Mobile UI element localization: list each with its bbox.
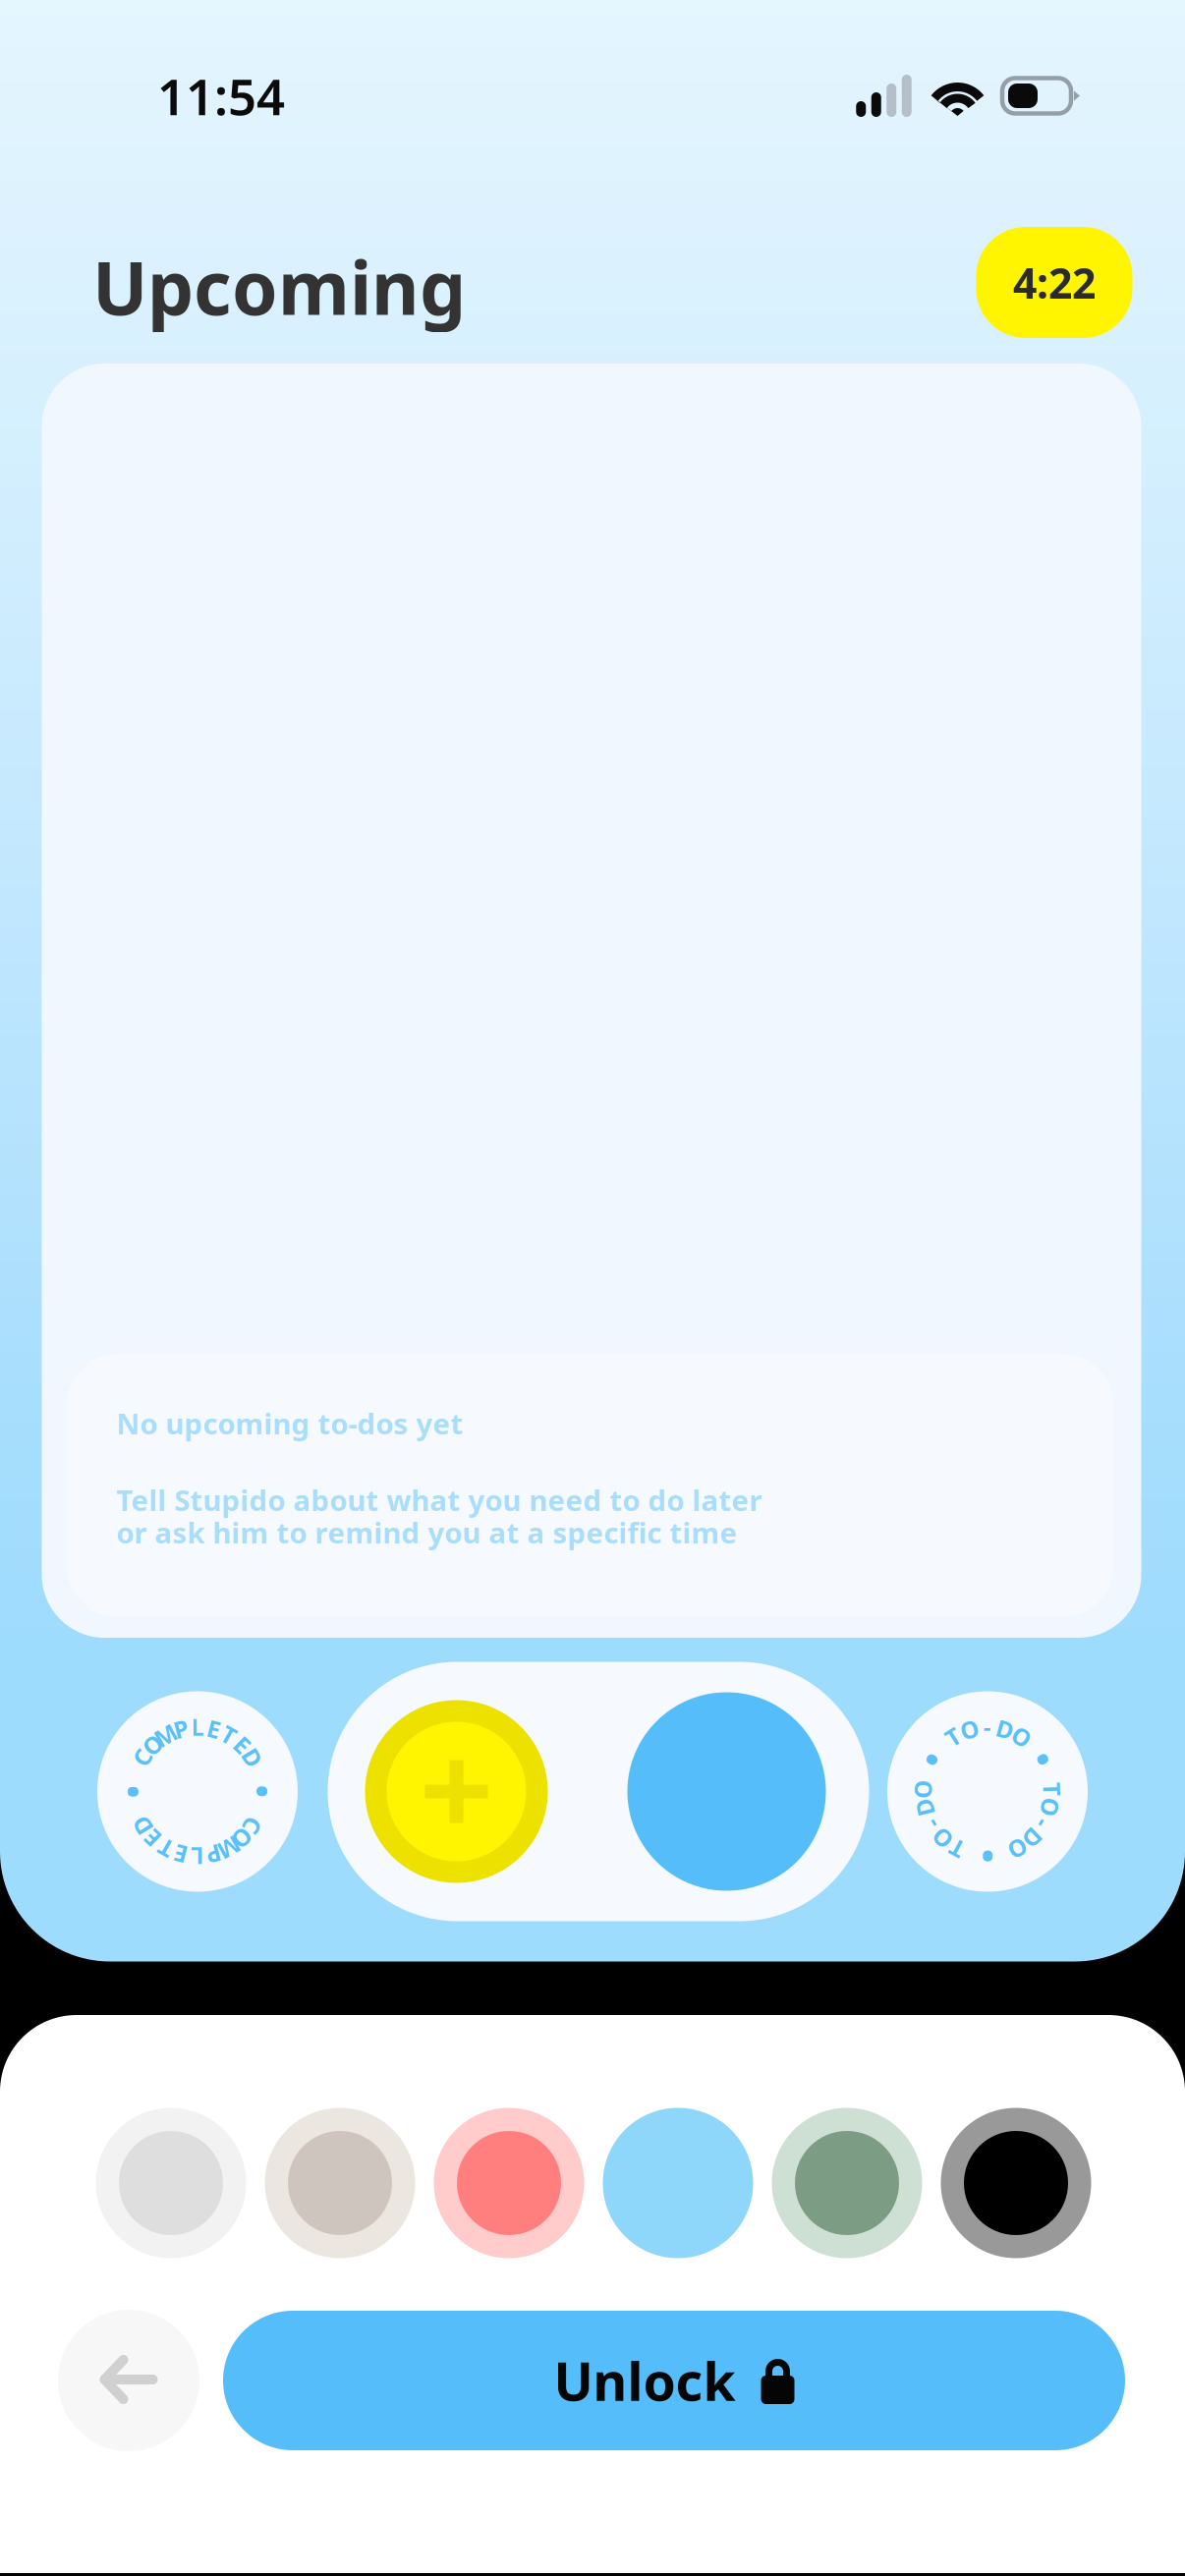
staticText: O (978, 1711, 997, 1742)
staticText: Unlock (554, 2346, 735, 2415)
button[interactable]: 4:22 (976, 227, 1132, 338)
button[interactable]: Green theme (773, 2109, 921, 2257)
staticText: E (191, 1711, 204, 1742)
staticText: E (191, 1711, 204, 1742)
staticText: - (984, 1711, 991, 1742)
staticText: - (984, 1711, 991, 1742)
staticText: 11:54 (157, 63, 285, 129)
staticText: E (191, 1711, 204, 1742)
staticText: O (188, 1711, 207, 1742)
staticText: O (978, 1711, 997, 1742)
staticText: C (190, 1711, 205, 1742)
staticText: O (978, 1711, 997, 1742)
staticText: • (981, 1703, 994, 1750)
staticText: O (978, 1711, 997, 1742)
staticText: L (191, 1711, 204, 1742)
staticText: D (979, 1711, 996, 1742)
button[interactable]: To-do (887, 1691, 1088, 1892)
staticText: C (190, 1711, 205, 1742)
staticText: D (189, 1711, 206, 1742)
staticText: 4:22 (1013, 255, 1096, 310)
staticText: • (981, 1703, 994, 1750)
button[interactable]: Back (58, 2310, 199, 2451)
staticText: O (188, 1711, 207, 1742)
staticText: P (190, 1711, 205, 1742)
button[interactable]: Light theme (97, 2109, 245, 2257)
staticText: M (186, 1711, 209, 1742)
button[interactable]: Completed (97, 1691, 298, 1892)
staticText: T (981, 1711, 994, 1742)
staticText: or ask him to remind you at a specific t… (116, 1513, 737, 1551)
staticText: D (189, 1711, 206, 1742)
staticText: • (191, 1703, 204, 1750)
staticText: • (981, 1703, 994, 1750)
staticText: O (978, 1711, 997, 1742)
button[interactable]: Blue theme (604, 2109, 752, 2257)
staticText: T (191, 1711, 204, 1742)
staticText: T (981, 1711, 994, 1742)
staticText: D (979, 1711, 996, 1742)
staticText: - (984, 1711, 991, 1742)
staticText: T (981, 1711, 994, 1742)
staticText: Upcoming (92, 238, 466, 335)
staticText: P (190, 1711, 205, 1742)
button[interactable]: Red theme (435, 2109, 583, 2257)
staticText: • (191, 1703, 204, 1750)
staticText: L (191, 1711, 204, 1742)
staticText: O (978, 1711, 997, 1742)
staticText: Tell Stupido about what you need to do l… (116, 1481, 762, 1519)
button[interactable]: Dark theme (942, 2109, 1090, 2257)
button[interactable]: Unlock (223, 2311, 1125, 2450)
staticText: E (191, 1711, 204, 1742)
staticText: No upcoming to-dos yet (116, 1404, 463, 1442)
staticText: T (191, 1711, 204, 1742)
staticText: D (979, 1711, 996, 1742)
button[interactable]: Add to-do (365, 1700, 548, 1883)
staticText: M (186, 1711, 209, 1742)
button[interactable]: Assistant (627, 1692, 826, 1891)
button[interactable]: Sand theme (266, 2109, 414, 2257)
